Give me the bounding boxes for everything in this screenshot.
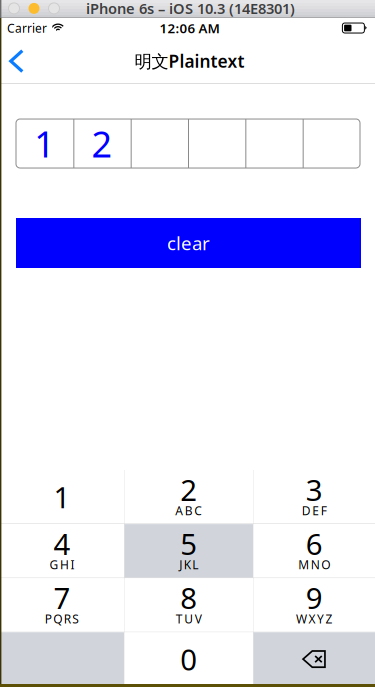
button[interactable]: 0 [124,632,253,686]
button[interactable]: 9 [253,578,375,632]
button[interactable]: clear [16,218,361,268]
staticText: JKL [179,557,203,573]
staticText: 1 [53,477,70,516]
staticText: 8 [180,578,197,617]
staticText: 9 [306,578,323,617]
staticText: 12:06 AM [159,19,219,37]
staticText: clear [167,231,210,255]
staticText: 明文Plaintext [134,49,244,72]
staticText: 2 [91,120,112,167]
staticText: 6 [306,524,323,563]
staticText: TUV [176,611,206,627]
button[interactable]: Back [1,38,31,84]
button[interactable]: 6 [253,524,375,578]
staticText: 4 [53,524,70,563]
staticText: DEF [302,503,331,518]
staticText: Carrier [7,20,47,36]
staticText: 3 [306,470,323,509]
staticText: WXYZ [296,611,337,627]
staticText: GHI [49,557,79,573]
button[interactable]: 5 [124,524,253,578]
button[interactable]: blank [0,632,124,686]
staticText: PQRS [45,611,84,627]
staticText: MNO [298,557,335,573]
button[interactable]: 1 [0,470,124,524]
button[interactable]: 2 [124,470,253,524]
button[interactable]: 7 [0,578,124,632]
staticText: ABC [175,503,207,518]
staticText: 1 [34,120,55,167]
button[interactable]: 4 [0,524,124,578]
staticText: 7 [53,578,70,617]
staticText: iPhone 6s – iOS 10.3 (14E8301) [86,0,295,18]
button[interactable]: Delete [253,632,375,686]
staticText: 5 [180,524,197,563]
staticText: 2 [180,470,197,509]
button[interactable]: 8 [124,578,253,632]
staticText: 0 [180,640,197,679]
button[interactable]: 3 [253,470,375,524]
